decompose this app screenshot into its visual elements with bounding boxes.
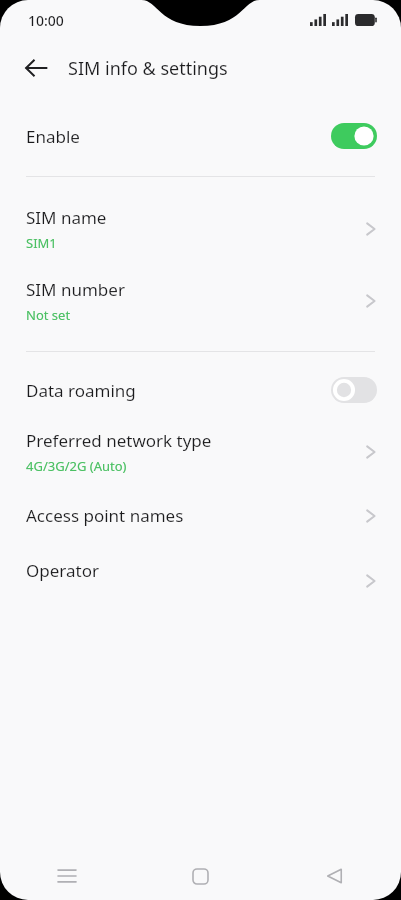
button[interactable]: Back [267, 852, 401, 900]
button[interactable]: SIM number [0, 265, 401, 337]
staticText: Access point names [26, 504, 365, 527]
staticText: 4G/3G/2G (Auto) [26, 457, 127, 475]
staticText: SIM name [26, 206, 107, 229]
staticText: Operator [26, 559, 365, 582]
button[interactable]: Data roaming [0, 364, 401, 416]
staticText: Data roaming [26, 379, 136, 402]
staticText: Enable [26, 125, 80, 148]
staticText: SIM number [26, 278, 125, 301]
staticText: SIM info & settings [68, 56, 228, 81]
button[interactable]: Recent apps [0, 852, 133, 900]
button[interactable]: Back [14, 46, 58, 90]
button[interactable]: Enable [0, 114, 401, 158]
staticText: SIM1 [26, 234, 57, 252]
staticText: Preferred network type [26, 429, 212, 452]
button[interactable]: Home [133, 852, 267, 900]
button[interactable]: Operator [0, 543, 401, 598]
button[interactable]: Preferred network type [0, 416, 401, 488]
button[interactable]: SIM name [0, 193, 401, 265]
staticText: Not set [26, 306, 71, 324]
staticText: 10:00 [28, 11, 64, 30]
button[interactable]: Access point names [0, 488, 401, 543]
